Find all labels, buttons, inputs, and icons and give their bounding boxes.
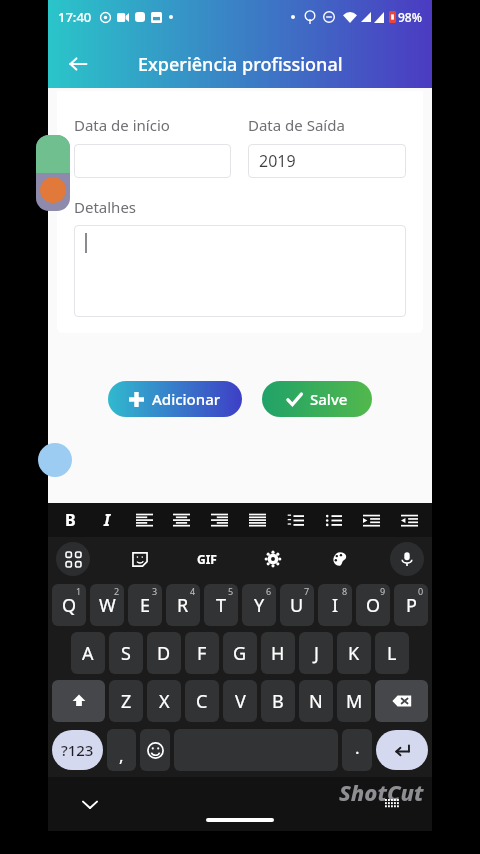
button[interactable]: ?123 bbox=[52, 730, 103, 770]
button[interactable]: Voice input bbox=[390, 542, 424, 576]
button[interactable]: Bold bbox=[52, 503, 89, 537]
button[interactable]: X bbox=[147, 680, 181, 722]
button[interactable]: H bbox=[261, 632, 295, 674]
staticText: C bbox=[196, 689, 208, 714]
button[interactable]: N bbox=[299, 680, 333, 722]
button[interactable]: Apps bbox=[56, 542, 90, 576]
button[interactable]: A bbox=[71, 632, 105, 674]
button[interactable]: Enter bbox=[376, 730, 428, 770]
staticText: K bbox=[348, 641, 360, 666]
button[interactable]: P bbox=[394, 584, 428, 626]
button[interactable]: M bbox=[337, 680, 371, 722]
button[interactable]: V bbox=[223, 680, 257, 722]
staticText: B bbox=[272, 689, 284, 714]
button[interactable]: Align center bbox=[163, 503, 200, 537]
button[interactable]: Hide keyboard bbox=[76, 790, 104, 818]
button[interactable]: T bbox=[204, 584, 238, 626]
button[interactable]: Stickers bbox=[123, 542, 157, 576]
staticText: M bbox=[346, 689, 363, 714]
button[interactable]: C bbox=[185, 680, 219, 722]
staticText: D bbox=[157, 641, 171, 666]
staticText: U bbox=[290, 593, 304, 618]
button[interactable]: Themes bbox=[323, 542, 357, 576]
staticText: L bbox=[387, 641, 397, 666]
staticText: 3 bbox=[152, 585, 158, 597]
staticText: G bbox=[233, 641, 247, 666]
button[interactable]: O bbox=[356, 584, 390, 626]
button[interactable]: G bbox=[223, 632, 257, 674]
staticText: X bbox=[159, 689, 170, 714]
button[interactable]: Shift bbox=[52, 680, 105, 722]
button[interactable]: Emoji bbox=[140, 729, 170, 771]
button[interactable]: K bbox=[337, 632, 371, 674]
button[interactable]: I bbox=[318, 584, 352, 626]
button[interactable]: Y bbox=[242, 584, 276, 626]
staticText: V bbox=[235, 689, 246, 714]
staticText: Z bbox=[121, 689, 132, 714]
staticText: 0 bbox=[418, 585, 424, 597]
button[interactable]: J bbox=[299, 632, 333, 674]
button[interactable]: S bbox=[109, 632, 143, 674]
button[interactable]: Back bbox=[60, 46, 96, 82]
button[interactable]: GIF bbox=[190, 542, 224, 576]
staticText: Experiência profissional bbox=[138, 52, 343, 77]
button[interactable]: 2019 bbox=[248, 144, 406, 178]
staticText: . bbox=[355, 736, 360, 759]
button[interactable]: Italic bbox=[89, 503, 126, 537]
staticText: 7 bbox=[304, 585, 310, 597]
staticText: , bbox=[119, 744, 124, 767]
staticText: ?123 bbox=[61, 740, 94, 760]
staticText: F bbox=[197, 641, 207, 666]
staticText: I bbox=[332, 593, 339, 618]
button[interactable]: Comma bbox=[107, 729, 136, 771]
staticText: Salve bbox=[310, 389, 348, 409]
button[interactable]: Outdent bbox=[390, 503, 428, 537]
button[interactable] bbox=[74, 225, 406, 317]
staticText: B bbox=[65, 509, 76, 531]
button[interactable]: D bbox=[147, 632, 181, 674]
staticText: Data de Saída bbox=[248, 115, 345, 135]
staticText: 1 bbox=[76, 585, 82, 597]
staticText: Adicionar bbox=[152, 389, 221, 409]
button[interactable]: U bbox=[280, 584, 314, 626]
staticText: ShotCut bbox=[339, 777, 424, 807]
staticText: 2 bbox=[114, 585, 120, 597]
button[interactable]: Period bbox=[342, 729, 372, 771]
staticText: Y bbox=[254, 593, 265, 618]
button[interactable]: W bbox=[90, 584, 124, 626]
button[interactable] bbox=[74, 144, 231, 178]
button[interactable]: E bbox=[128, 584, 162, 626]
button[interactable]: Settings bbox=[256, 542, 290, 576]
staticText: N bbox=[309, 689, 323, 714]
button[interactable]: Numbered list bbox=[276, 503, 314, 537]
staticText: 98% bbox=[398, 9, 422, 25]
button[interactable]: Backspace bbox=[375, 680, 428, 722]
staticText: Q bbox=[62, 593, 77, 618]
staticText: 8 bbox=[342, 585, 348, 597]
staticText: Data de início bbox=[74, 115, 170, 135]
button[interactable]: Bullet list bbox=[314, 503, 352, 537]
staticText: 9 bbox=[380, 585, 386, 597]
staticText: 17:40 bbox=[58, 8, 92, 26]
button[interactable]: Floating control bbox=[38, 443, 72, 477]
button[interactable]: Align left bbox=[126, 503, 163, 537]
staticText: 2019 bbox=[259, 150, 296, 172]
button[interactable]: L bbox=[375, 632, 409, 674]
button[interactable]: Indent bbox=[352, 503, 390, 537]
staticText: E bbox=[140, 593, 151, 618]
staticText: T bbox=[216, 593, 227, 618]
button[interactable]: Adicionar bbox=[108, 381, 242, 417]
button[interactable]: Q bbox=[52, 584, 86, 626]
button[interactable]: F bbox=[185, 632, 219, 674]
button[interactable]: B bbox=[261, 680, 295, 722]
staticText: O bbox=[366, 593, 381, 618]
button[interactable]: Salve bbox=[262, 381, 372, 417]
button[interactable]: Justify bbox=[238, 503, 276, 537]
staticText: P bbox=[406, 593, 417, 618]
button[interactable]: R bbox=[166, 584, 200, 626]
button[interactable]: Z bbox=[109, 680, 143, 722]
staticText: 5 bbox=[228, 585, 234, 597]
button[interactable]: Align right bbox=[200, 503, 238, 537]
button[interactable]: Switch keyboard bbox=[378, 790, 406, 818]
